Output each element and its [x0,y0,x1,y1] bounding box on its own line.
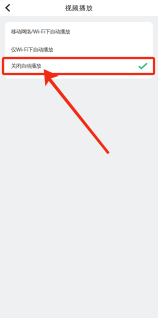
button[interactable]: 关闭自动播放 [5,58,153,74]
button[interactable]: Back [0,0,17,16]
staticText: 仅Wi-Fi下自动播放 [11,46,53,53]
staticText: 关闭自动播放 [11,63,41,69]
button[interactable]: 仅Wi-Fi下自动播放 [5,41,153,58]
button[interactable]: 移动网络/Wi-Fi下自动播放 [5,22,153,41]
staticText: 视频播放 [65,4,93,12]
staticText: 移动网络/Wi-Fi下自动播放 [11,28,70,35]
